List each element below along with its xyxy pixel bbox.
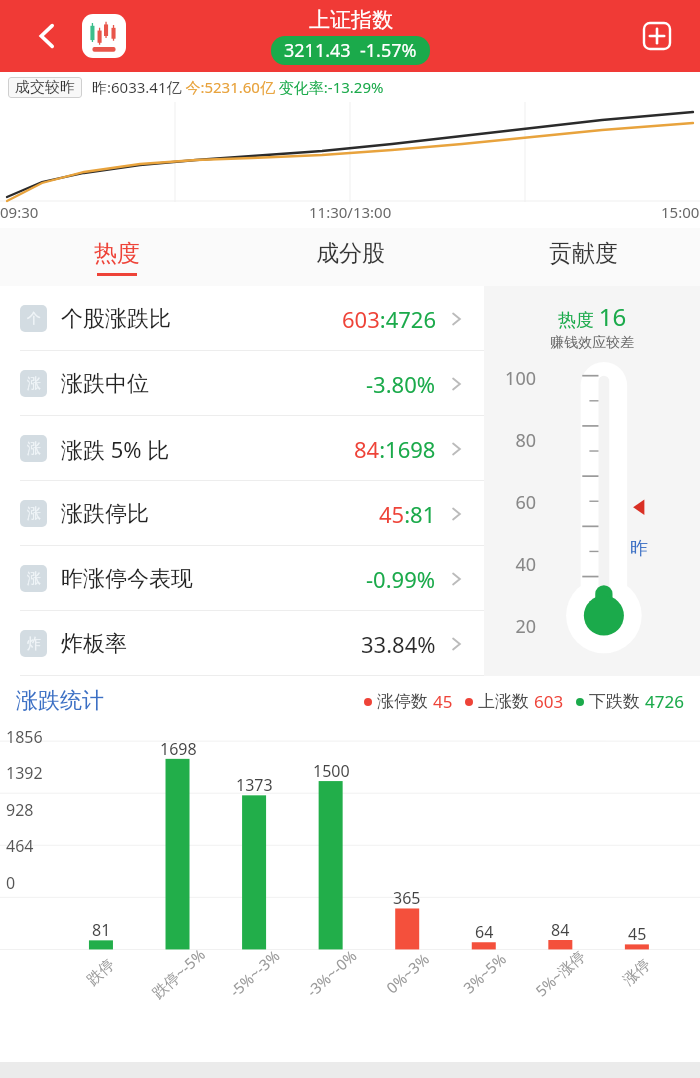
- button[interactable]: 成交较昨: [15, 78, 75, 97]
- staticText: 64: [475, 921, 494, 943]
- staticText: 涨停: [619, 955, 654, 990]
- staticText: 下跌数: [589, 691, 640, 712]
- staticText: 1392: [6, 762, 43, 784]
- staticText: 1698: [160, 738, 197, 760]
- staticText: 涨跌统计: [16, 687, 104, 715]
- staticText: 1373: [236, 774, 273, 796]
- staticText: 涨停数: [377, 691, 428, 712]
- button[interactable]: 热度: [0, 228, 234, 286]
- button[interactable]: 贡献度: [467, 228, 700, 286]
- staticText: 3211.43 -1.57%: [284, 38, 417, 63]
- staticText: 15:00: [661, 202, 700, 222]
- button[interactable]: 涨: [0, 416, 484, 481]
- staticText: 昨:6033.41亿 今:5231.60亿 变化率:-13.29%: [92, 77, 384, 97]
- staticText: 3%~5%: [459, 948, 510, 997]
- staticText: 热度: [94, 239, 140, 268]
- staticText: 涨: [27, 570, 41, 588]
- staticText: 涨: [27, 505, 41, 523]
- button[interactable]: 涨: [0, 546, 484, 611]
- staticText: 个股涨跌比: [61, 305, 171, 333]
- button[interactable]: 个: [0, 286, 484, 351]
- staticText: 1856: [6, 726, 43, 748]
- staticText: 赚钱效应较差: [550, 334, 634, 352]
- staticText: 365: [393, 887, 421, 909]
- staticText: 涨: [27, 440, 41, 458]
- staticText: -0.99%: [366, 564, 436, 594]
- staticText: -5%~-3%: [225, 945, 284, 1001]
- staticText: 84: [551, 919, 570, 941]
- staticText: 1500: [313, 760, 350, 782]
- staticText: -3.80%: [366, 369, 436, 399]
- button[interactable]: 涨: [0, 351, 484, 416]
- staticText: 涨: [27, 375, 41, 393]
- staticText: 4726: [645, 690, 684, 713]
- staticText: 464: [6, 835, 34, 857]
- staticText: 40: [500, 552, 536, 577]
- staticText: 928: [6, 799, 34, 821]
- staticText: 0: [6, 872, 16, 894]
- staticText: 84:1698: [354, 434, 436, 464]
- staticText: 成分股: [316, 239, 385, 268]
- staticText: 20: [500, 614, 536, 639]
- staticText: 11:30/13:00: [309, 202, 392, 222]
- staticText: 热度 16: [558, 300, 627, 333]
- button[interactable]: Add: [636, 15, 678, 57]
- staticText: 0%~3%: [382, 948, 433, 997]
- staticText: 603: [534, 690, 564, 713]
- staticText: 09:30: [0, 202, 39, 222]
- staticText: 涨跌停比: [61, 500, 149, 528]
- button[interactable]: 热度 16: [484, 286, 700, 676]
- staticText: 45: [628, 923, 647, 945]
- button[interactable]: App icon: [82, 14, 126, 58]
- staticText: -3%~-0%: [302, 945, 361, 1001]
- staticText: 81: [92, 919, 111, 941]
- staticText: 炸板率: [61, 630, 127, 658]
- staticText: 涨跌 5% 比: [61, 434, 170, 464]
- button[interactable]: 炸: [0, 611, 484, 676]
- button[interactable]: 成分股: [234, 228, 467, 286]
- staticText: 成交较昨: [15, 78, 75, 97]
- staticText: 个: [27, 310, 41, 328]
- staticText: 上证指数: [309, 7, 393, 33]
- staticText: 上涨数: [478, 691, 529, 712]
- staticText: 5%~涨停: [531, 945, 589, 1000]
- staticText: 100: [500, 366, 536, 391]
- staticText: 45: [433, 690, 453, 713]
- staticText: 603:4726: [342, 304, 436, 334]
- staticText: 炸: [27, 635, 41, 653]
- staticText: 80: [500, 428, 536, 453]
- button[interactable]: 涨: [0, 481, 484, 546]
- staticText: 贡献度: [549, 239, 618, 268]
- staticText: 跌停: [83, 955, 118, 990]
- staticText: 跌停~-5%: [148, 944, 209, 1002]
- staticText: 涨跌中位: [61, 370, 149, 398]
- staticText: 昨: [630, 537, 648, 560]
- staticText: 昨涨停今表现: [61, 565, 193, 593]
- staticText: 33.84%: [361, 629, 436, 659]
- button[interactable]: Back: [26, 15, 68, 57]
- staticText: 45:81: [379, 499, 436, 529]
- staticText: 60: [500, 490, 536, 515]
